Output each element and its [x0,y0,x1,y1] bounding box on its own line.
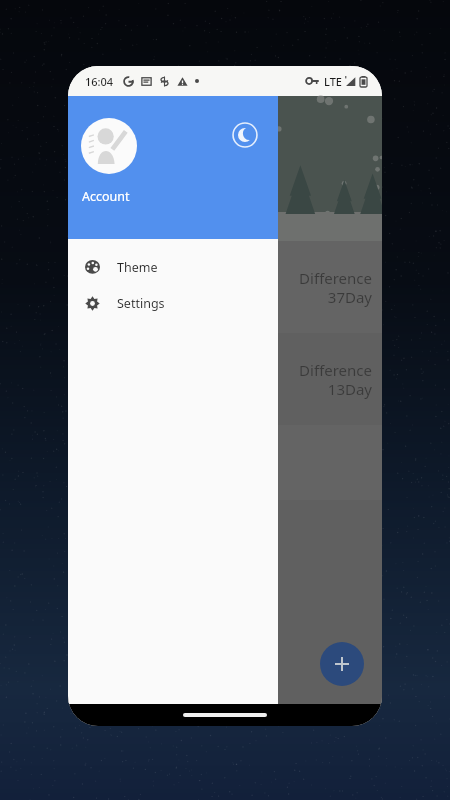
button[interactable]: Theme [68,249,278,285]
staticText: LTE [324,74,342,89]
button[interactable]: Settings [68,285,278,321]
button[interactable] [81,118,137,174]
staticText: Difference13Day [294,360,372,399]
staticText: Settings [117,295,165,312]
staticText: Account [82,188,130,205]
button[interactable]: Add [320,642,364,686]
staticText: Difference37Day [294,268,372,307]
staticText: 16:04 [85,74,114,89]
staticText: Theme [117,259,158,276]
button[interactable]: Difference37Day [68,241,382,333]
button[interactable]: Difference13Day [68,333,382,425]
button[interactable]: Toggle dark mode [230,120,260,150]
